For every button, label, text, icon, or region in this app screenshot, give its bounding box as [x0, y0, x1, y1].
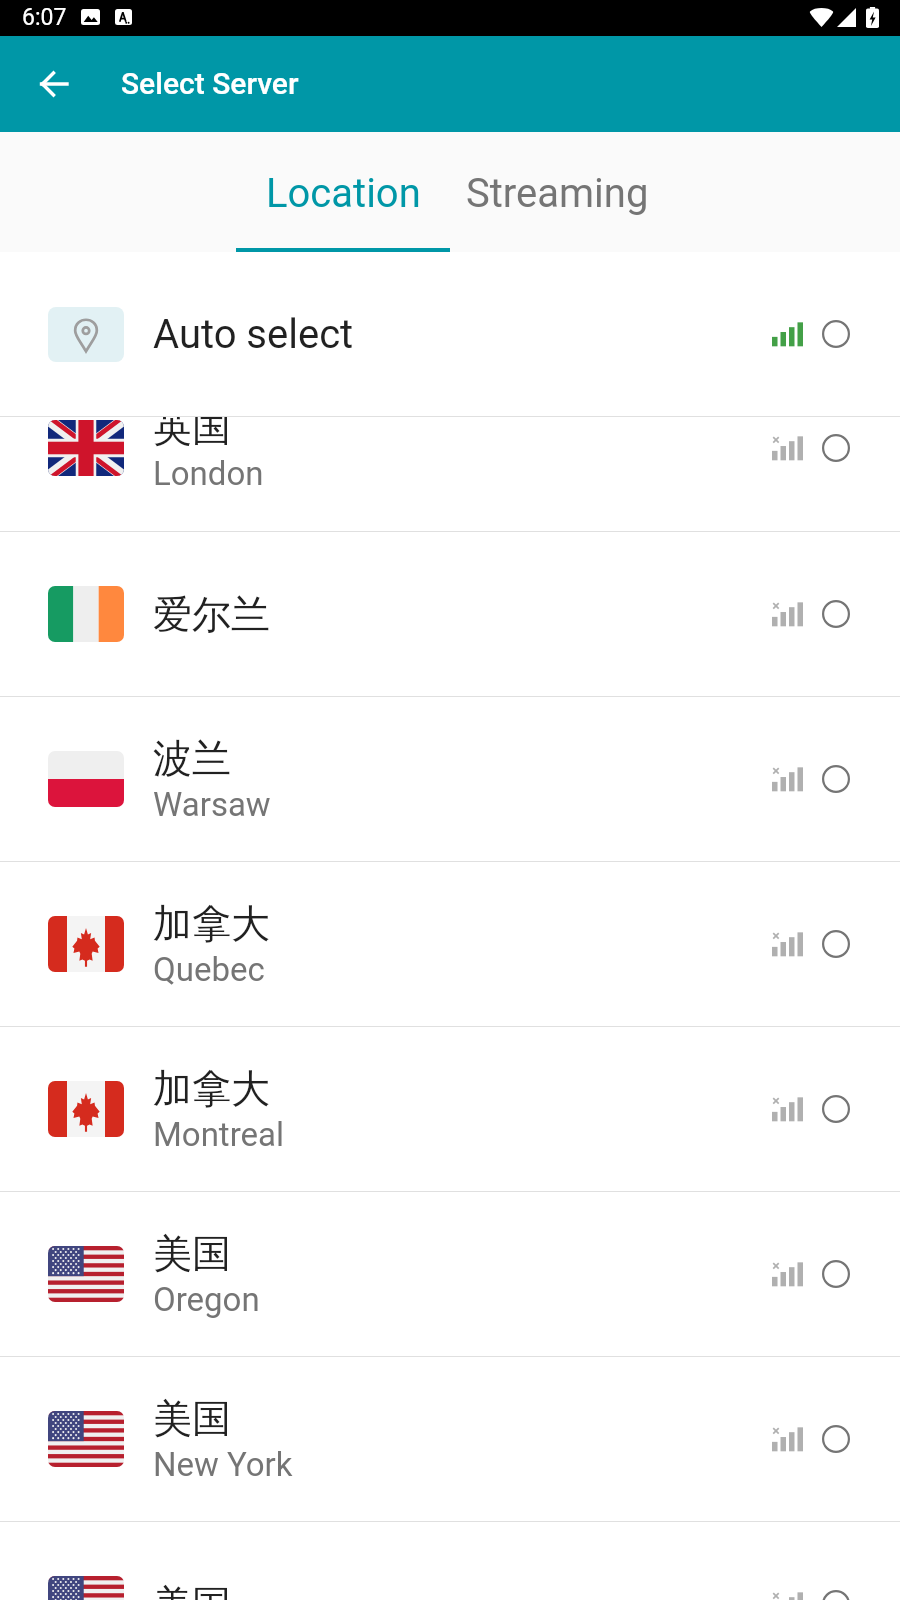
button[interactable]: 波兰: [0, 697, 900, 861]
button[interactable]: 英国: [0, 417, 900, 530]
button[interactable]: 加拿大: [0, 862, 900, 1026]
staticText: 波兰: [153, 734, 231, 783]
staticText: 加拿大: [153, 1064, 270, 1113]
staticText: Auto select: [153, 311, 354, 358]
staticText: Montreal: [153, 1115, 285, 1154]
button[interactable]: 美国: [0, 1522, 900, 1600]
button[interactable]: Streaming: [450, 132, 664, 252]
button[interactable]: Back: [14, 44, 94, 124]
button[interactable]: 爱尔兰: [0, 532, 900, 696]
staticText: 加拿大: [153, 899, 270, 948]
staticText: Quebec: [153, 950, 265, 989]
staticText: 6:07: [22, 4, 67, 31]
staticText: 美国: [153, 1229, 231, 1278]
staticText: Location: [266, 170, 421, 217]
button[interactable]: Auto select: [0, 252, 900, 416]
staticText: 美国: [153, 1580, 231, 1600]
staticText: London: [153, 454, 264, 493]
button[interactable]: 加拿大: [0, 1027, 900, 1191]
button[interactable]: 美国: [0, 1357, 900, 1521]
staticText: Warsaw: [153, 785, 271, 824]
staticText: 英国: [153, 417, 231, 452]
button[interactable]: Location: [236, 132, 450, 252]
button[interactable]: 美国: [0, 1192, 900, 1356]
staticText: Streaming: [466, 170, 649, 217]
staticText: New York: [153, 1445, 293, 1484]
staticText: Oregon: [153, 1280, 260, 1319]
staticText: Select Server: [121, 66, 299, 101]
staticText: 爱尔兰: [153, 590, 270, 639]
staticText: 美国: [153, 1394, 231, 1443]
